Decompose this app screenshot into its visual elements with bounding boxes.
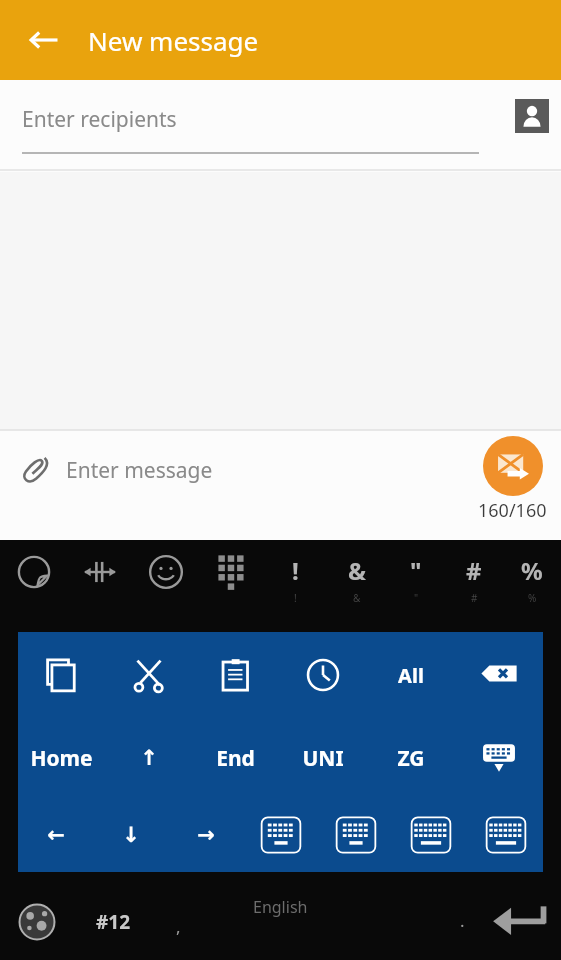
button[interactable]: Key (455, 632, 543, 718)
staticText: ↓ (122, 823, 140, 847)
staticText: ← (47, 823, 65, 847)
staticText: & (348, 554, 366, 587)
button[interactable]: Keyboard tool (67, 554, 133, 610)
button[interactable]: # (445, 554, 503, 616)
button[interactable]: Send (483, 436, 543, 496)
button[interactable]: % (503, 554, 561, 616)
button[interactable]: End (192, 718, 279, 798)
staticText: UNI (302, 744, 344, 773)
staticText: English (253, 896, 308, 918)
button[interactable]: ↓ (93, 798, 168, 872)
button[interactable]: Enter (489, 900, 551, 944)
button[interactable]: ↑ (105, 718, 192, 798)
button[interactable]: Keyboard tool (133, 554, 199, 610)
staticText: New message (88, 23, 259, 58)
button[interactable]: Key (393, 798, 468, 872)
button[interactable]: Back (18, 14, 70, 66)
button[interactable]: Home (18, 718, 105, 798)
button[interactable]: ZG (367, 718, 455, 798)
staticText: 160/160 (478, 498, 547, 523)
staticText: , (176, 915, 181, 938)
staticText: ! (294, 591, 297, 605)
button[interactable]: Pick contact (515, 99, 549, 133)
staticText: " (410, 554, 422, 587)
staticText: Home (30, 744, 93, 773)
button[interactable]: Key (318, 798, 393, 872)
button[interactable]: Change language (14, 899, 60, 945)
button[interactable]: Key (279, 632, 367, 718)
staticText: All (398, 662, 424, 689)
staticText: → (197, 823, 215, 847)
button[interactable]: Key (243, 798, 318, 872)
button[interactable]: Key (18, 632, 105, 718)
staticText: . (460, 909, 465, 932)
button[interactable]: Keyboard tool (0, 554, 67, 610)
staticText: # (471, 591, 478, 605)
button[interactable]: Key (105, 632, 192, 718)
staticText: #12 (96, 909, 131, 935)
staticText: & (353, 591, 361, 605)
button[interactable]: All (367, 632, 455, 718)
staticText: Enter message (66, 456, 213, 485)
staticText: ZG (397, 744, 425, 773)
button[interactable]: " (387, 554, 445, 616)
staticText: ↑ (140, 746, 158, 770)
staticText: % (521, 554, 543, 587)
button[interactable]: Key (192, 632, 279, 718)
staticText: # (466, 554, 482, 587)
staticText: ! (292, 554, 299, 587)
button[interactable]: Attach (12, 444, 60, 492)
button[interactable]: ← (18, 798, 93, 872)
button[interactable]: Key (455, 718, 543, 798)
button[interactable]: UNI (279, 718, 367, 798)
staticText: End (216, 744, 255, 773)
staticText: Enter recipients (22, 105, 177, 134)
button[interactable]: Keyboard tool (199, 554, 265, 610)
staticText: " (414, 591, 419, 605)
staticText: % (528, 591, 537, 605)
button[interactable]: Key (468, 798, 543, 872)
button[interactable]: ! (265, 554, 326, 616)
button[interactable]: & (326, 554, 387, 616)
button[interactable]: → (168, 798, 243, 872)
